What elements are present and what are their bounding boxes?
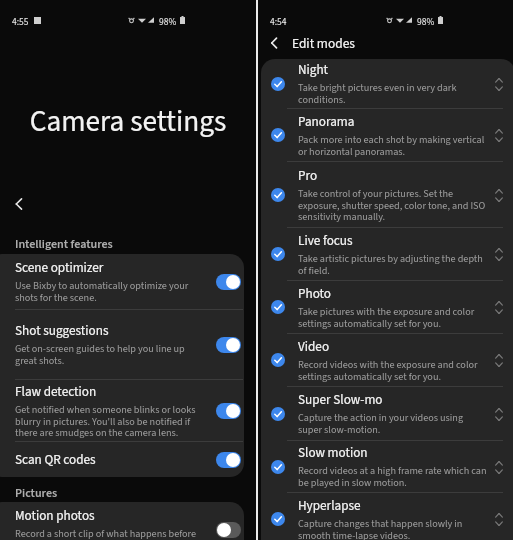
staticText: Live focus bbox=[298, 231, 353, 250]
staticText: Scan QR codes bbox=[15, 450, 96, 469]
button[interactable]: Reorder bbox=[492, 245, 506, 263]
staticText: Super Slow-mo bbox=[298, 390, 383, 409]
button[interactable]: Toggle bbox=[216, 452, 241, 468]
button[interactable]: Reorder bbox=[492, 298, 506, 316]
button[interactable]: Pro bbox=[261, 162, 513, 227]
button[interactable]: Scan QR codes bbox=[0, 442, 244, 477]
staticText: Capture changes that happen slowly in sm… bbox=[298, 517, 487, 540]
staticText: Scene optimizer bbox=[15, 258, 104, 277]
button[interactable]: Toggle bbox=[216, 403, 241, 419]
staticText: Motion photos bbox=[15, 506, 95, 525]
staticText: Use Bixby to automatically optimize your… bbox=[15, 279, 204, 305]
staticText: Take pictures with the exposure and colo… bbox=[298, 305, 487, 331]
staticText: Capture the action in your videos using … bbox=[298, 411, 487, 437]
staticText: Pro bbox=[298, 166, 318, 185]
button[interactable]: Flaw detection bbox=[0, 380, 244, 441]
staticText: Take bright pictures even in very dark c… bbox=[298, 81, 487, 107]
button[interactable]: Toggle bbox=[216, 274, 241, 290]
button[interactable]: Live focus bbox=[261, 228, 513, 280]
button[interactable]: Video bbox=[261, 334, 513, 386]
button[interactable]: Reorder bbox=[492, 75, 506, 93]
staticText: Flaw detection bbox=[15, 382, 97, 401]
staticText: Record videos with the exposure and colo… bbox=[298, 358, 487, 384]
staticText: Intelligent features bbox=[15, 236, 113, 253]
staticText: Get on-screen guides to help you line up… bbox=[15, 342, 204, 368]
button[interactable]: Motion photos bbox=[0, 502, 244, 540]
staticText: Record a short clip of what happens befo… bbox=[15, 527, 204, 540]
staticText: 4:54 bbox=[270, 15, 287, 25]
button[interactable]: Night bbox=[261, 59, 513, 108]
button[interactable]: Super Slow-mo bbox=[261, 387, 513, 440]
staticText: Hyperlapse bbox=[298, 496, 361, 515]
button[interactable]: Reorder bbox=[492, 351, 506, 369]
staticText: 4:55 bbox=[12, 15, 29, 25]
staticText: Pack more into each shot by making verti… bbox=[298, 133, 487, 159]
button[interactable]: Slow motion bbox=[261, 441, 513, 492]
button[interactable]: Reorder bbox=[492, 510, 506, 528]
staticText: Take control of your pictures. Set the e… bbox=[298, 187, 487, 224]
button[interactable]: Photo bbox=[261, 281, 513, 333]
staticText: Photo bbox=[298, 284, 331, 303]
button[interactable]: Reorder bbox=[492, 186, 506, 204]
staticText: Edit modes bbox=[292, 34, 355, 53]
button[interactable]: Panorama bbox=[261, 109, 513, 161]
button[interactable]: Shot suggestions bbox=[0, 310, 244, 379]
staticText: Shot suggestions bbox=[15, 321, 109, 340]
staticText: Night bbox=[298, 60, 329, 79]
button[interactable]: Reorder bbox=[492, 458, 506, 476]
staticText: Panorama bbox=[298, 112, 355, 131]
staticText: Video bbox=[298, 337, 330, 356]
button[interactable]: Back bbox=[5, 190, 33, 218]
button[interactable]: Scene optimizer bbox=[0, 254, 244, 309]
staticText: Slow motion bbox=[298, 443, 368, 462]
button[interactable]: Hyperlapse bbox=[261, 493, 513, 540]
staticText: 98% bbox=[417, 15, 435, 25]
button[interactable]: Back bbox=[261, 30, 287, 56]
button[interactable]: Toggle bbox=[216, 337, 241, 353]
staticText: 98% bbox=[159, 15, 177, 25]
button[interactable]: Reorder bbox=[492, 126, 506, 144]
staticText: Camera settings bbox=[0, 101, 256, 143]
staticText: Record videos at a high frame rate which… bbox=[298, 464, 487, 490]
staticText: Take artistic pictures by adjusting the … bbox=[298, 252, 487, 278]
staticText: Pictures bbox=[15, 485, 58, 502]
staticText: Get notified when someone blinks or look… bbox=[15, 403, 204, 440]
button[interactable]: Toggle bbox=[216, 522, 241, 538]
button[interactable]: Reorder bbox=[492, 405, 506, 423]
